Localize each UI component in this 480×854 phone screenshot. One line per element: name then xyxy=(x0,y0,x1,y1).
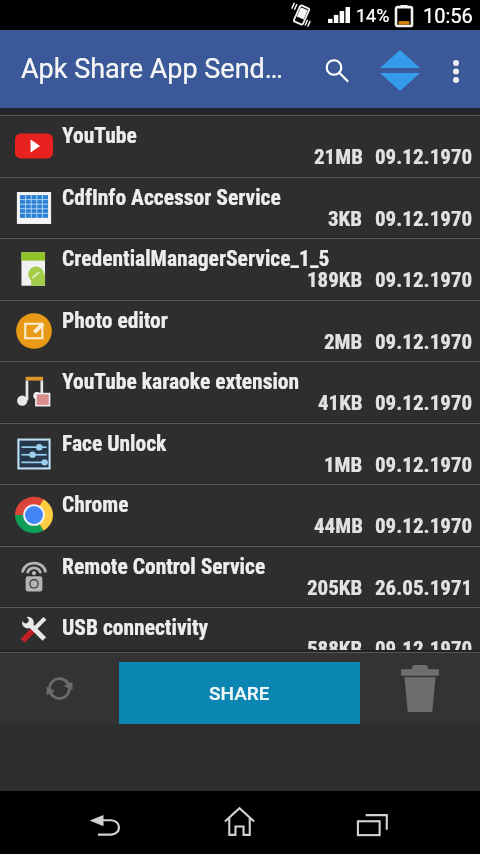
staticText: 1MB xyxy=(324,453,363,478)
button[interactable]: Home xyxy=(173,791,306,854)
button[interactable]: Back xyxy=(37,791,173,854)
staticText: USB connectivity xyxy=(62,615,209,640)
staticText: CdfInfo Accessor Service xyxy=(62,185,281,210)
staticText: 09.12.1970 xyxy=(375,268,473,293)
button[interactable]: USB connectivity xyxy=(0,608,480,650)
staticText: 09.12.1970 xyxy=(375,453,473,478)
staticText: 14% xyxy=(356,5,390,26)
button[interactable]: SHARE xyxy=(119,662,360,724)
button[interactable]: More options xyxy=(432,30,480,108)
staticText: Remote Control Service xyxy=(62,554,266,579)
button[interactable]: YouTube xyxy=(0,116,480,176)
staticText: Photo editor xyxy=(62,308,168,333)
button[interactable]: Recents xyxy=(306,791,439,854)
staticText: 189KB xyxy=(307,268,363,293)
staticText: CredentialManagerService_1_5 xyxy=(62,246,330,271)
button[interactable]: Face Unlock xyxy=(0,424,480,483)
staticText: 09.12.1970 xyxy=(375,637,473,662)
staticText: 09.12.1970 xyxy=(375,514,473,539)
staticText: 09.12.1970 xyxy=(375,145,473,170)
staticText: YouTube xyxy=(62,123,137,148)
button[interactable]: Sort xyxy=(368,30,432,108)
button[interactable]: Chrome xyxy=(0,485,480,545)
staticText: 588KB xyxy=(307,637,363,662)
staticText: 41KB xyxy=(318,391,363,416)
staticText: 09.12.1970 xyxy=(375,330,473,355)
button[interactable]: Delete xyxy=(360,653,480,724)
staticText: 09.12.1970 xyxy=(375,207,473,232)
staticText: Chrome xyxy=(62,492,129,517)
button[interactable]: CdfInfo Accessor Service xyxy=(0,178,480,237)
staticText: Face Unlock xyxy=(62,431,167,456)
staticText: 3KB xyxy=(328,207,363,232)
button[interactable]: CredentialManagerService_1_5 xyxy=(0,239,480,299)
button[interactable]: Search xyxy=(305,30,368,108)
staticText: Apk Share App Send… xyxy=(21,53,283,85)
button[interactable]: YouTube karaoke extension xyxy=(0,362,480,422)
staticText: 21MB xyxy=(314,145,363,170)
staticText: SHARE xyxy=(209,682,270,704)
button[interactable]: Remote Control Service xyxy=(0,547,480,606)
staticText: 205KB xyxy=(307,576,363,601)
button[interactable]: Refresh xyxy=(0,653,119,724)
staticText: 09.12.1970 xyxy=(375,391,473,416)
button[interactable]: Photo editor xyxy=(0,301,480,360)
staticText: 44MB xyxy=(314,514,363,539)
staticText: 2MB xyxy=(324,330,363,355)
staticText: YouTube karaoke extension xyxy=(62,369,300,394)
staticText: 26.05.1971 xyxy=(375,576,473,601)
staticText: 10:56 xyxy=(423,4,473,27)
